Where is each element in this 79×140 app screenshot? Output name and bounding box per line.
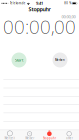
button[interactable]: Stoppuhr	[39, 130, 59, 140]
button[interactable]: Weltzeit	[0, 130, 20, 140]
button[interactable]: Merken	[49, 49, 70, 70]
staticText: 9:41	[36, 1, 43, 6]
staticText: Merken	[55, 58, 65, 62]
staticText: Stoppuhr	[28, 6, 50, 13]
staticText: Start	[15, 57, 23, 63]
staticText: Wecker	[25, 136, 34, 140]
staticText: Stoppuhr	[43, 136, 56, 140]
staticText: 80 %	[64, 1, 71, 5]
staticText: Weltzeit	[4, 136, 15, 140]
button[interactable]: Timer	[59, 130, 79, 140]
button[interactable]: Wecker	[20, 130, 40, 140]
staticText: 00:00,00	[3, 14, 76, 39]
button[interactable]: Start	[8, 49, 29, 70]
staticText: Timer	[66, 136, 73, 140]
staticText: Telekom.de	[10, 1, 26, 5]
staticText: 00:00,00	[61, 14, 75, 19]
